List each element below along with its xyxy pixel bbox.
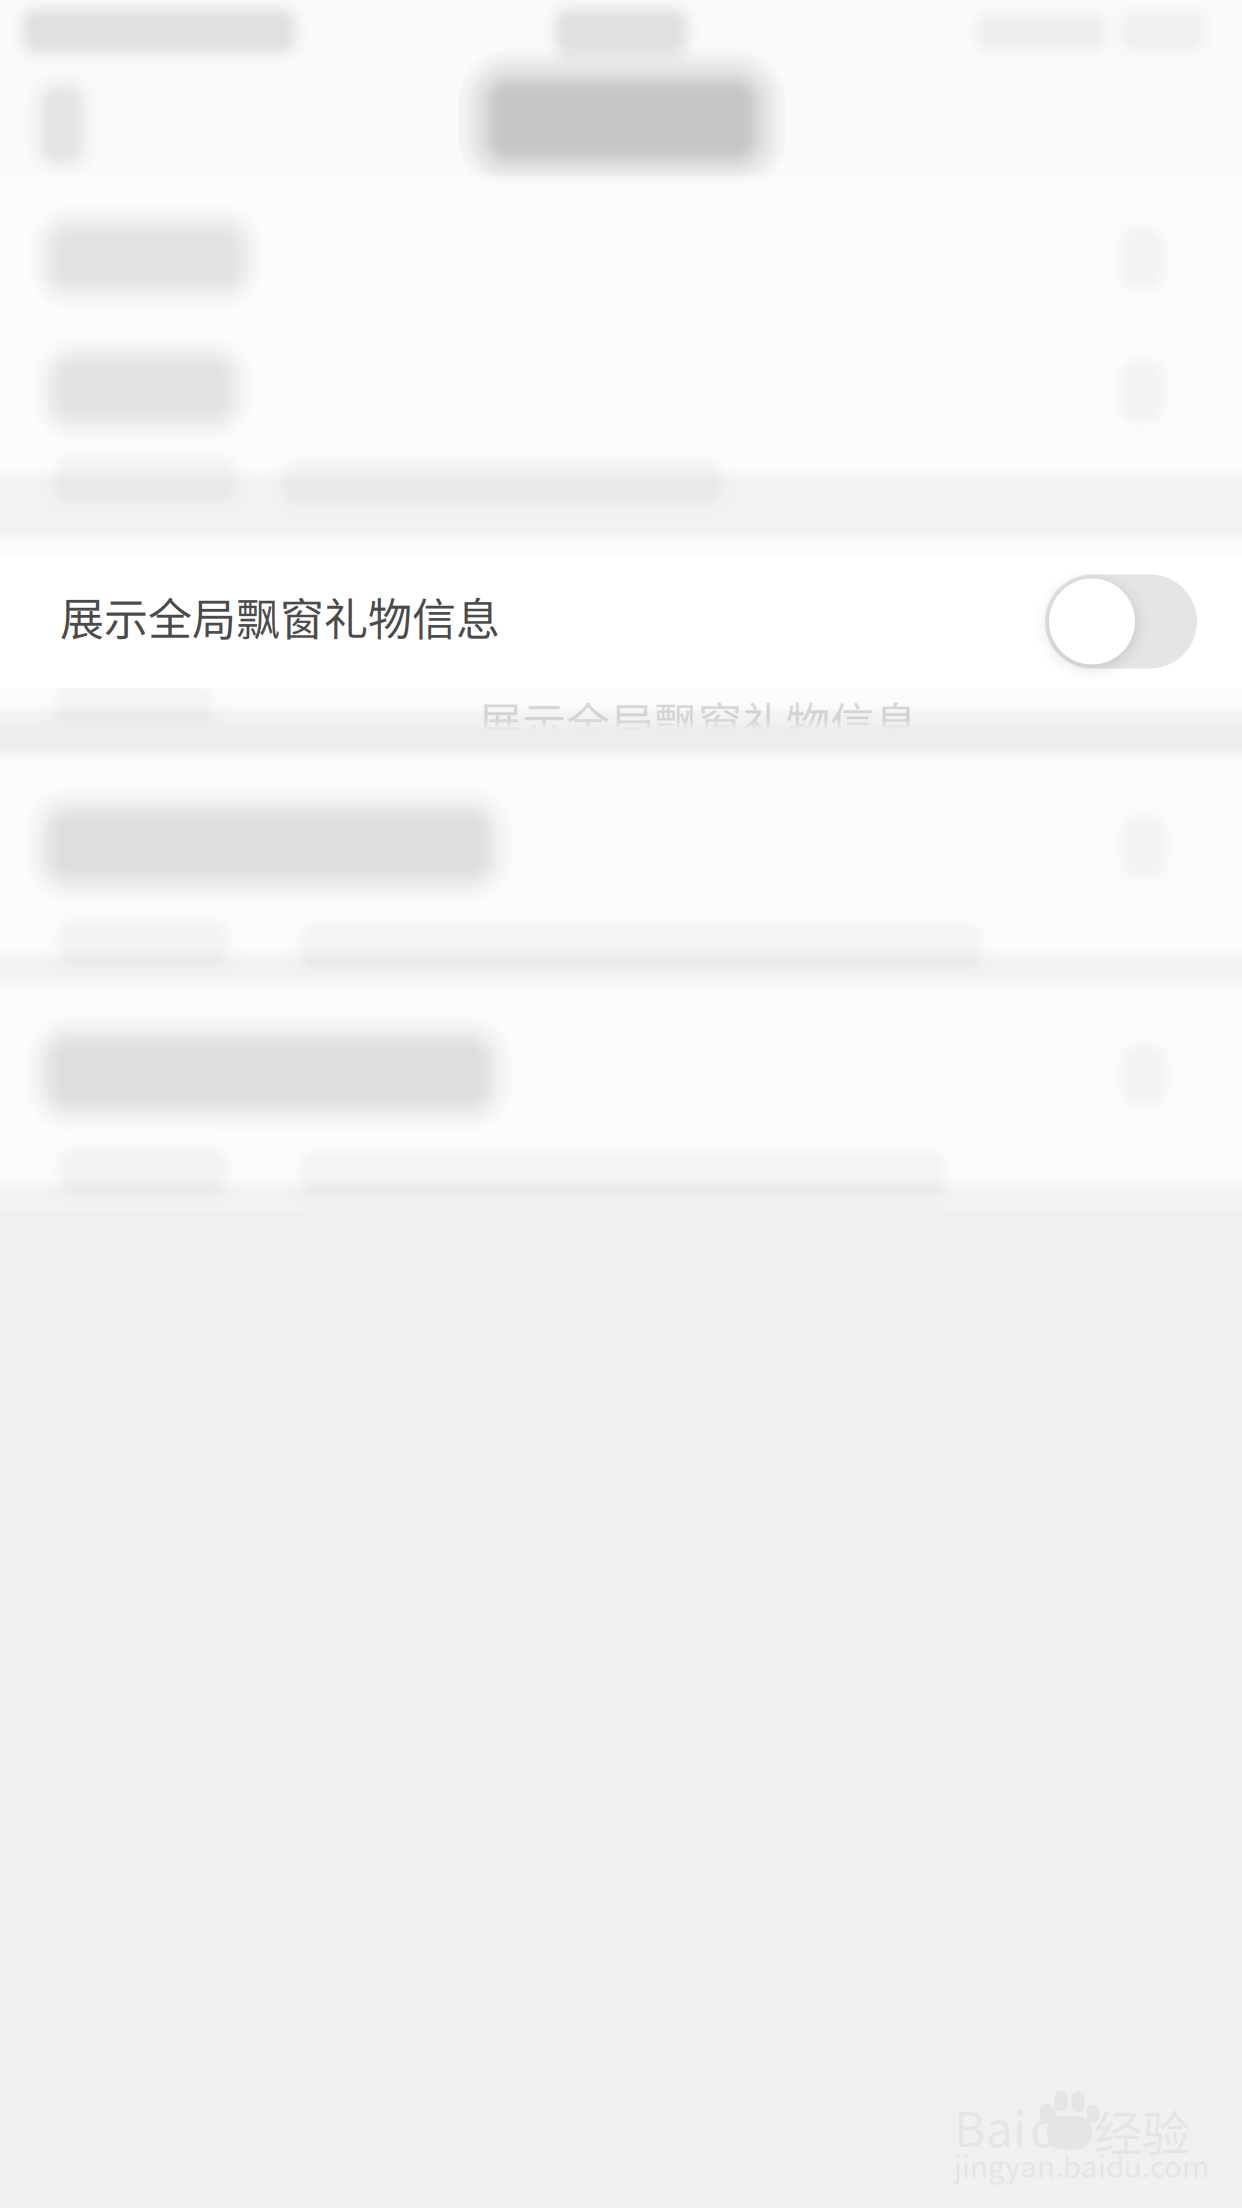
button[interactable]: 设置项四 (0, 998, 1242, 1170)
button[interactable]: 设置项一 (0, 192, 1242, 324)
button[interactable]: 返回 (14, 76, 134, 176)
staticText: Bai (954, 2091, 1026, 2161)
staticText: du (1030, 2091, 1089, 2161)
button[interactable]: 展示全局飘窗礼物信息 (0, 555, 1242, 688)
staticText: jingyan.baidu.com (954, 2144, 1209, 2186)
button[interactable]: 设置项二 (0, 324, 1242, 460)
button[interactable]: 设置项三 (0, 768, 1242, 940)
staticText: 展示全局飘窗礼物信息 (60, 585, 500, 648)
staticText: 经验 (1094, 2095, 1190, 2165)
staticText: 展示全局飘窗礼物信息 (478, 689, 918, 753)
